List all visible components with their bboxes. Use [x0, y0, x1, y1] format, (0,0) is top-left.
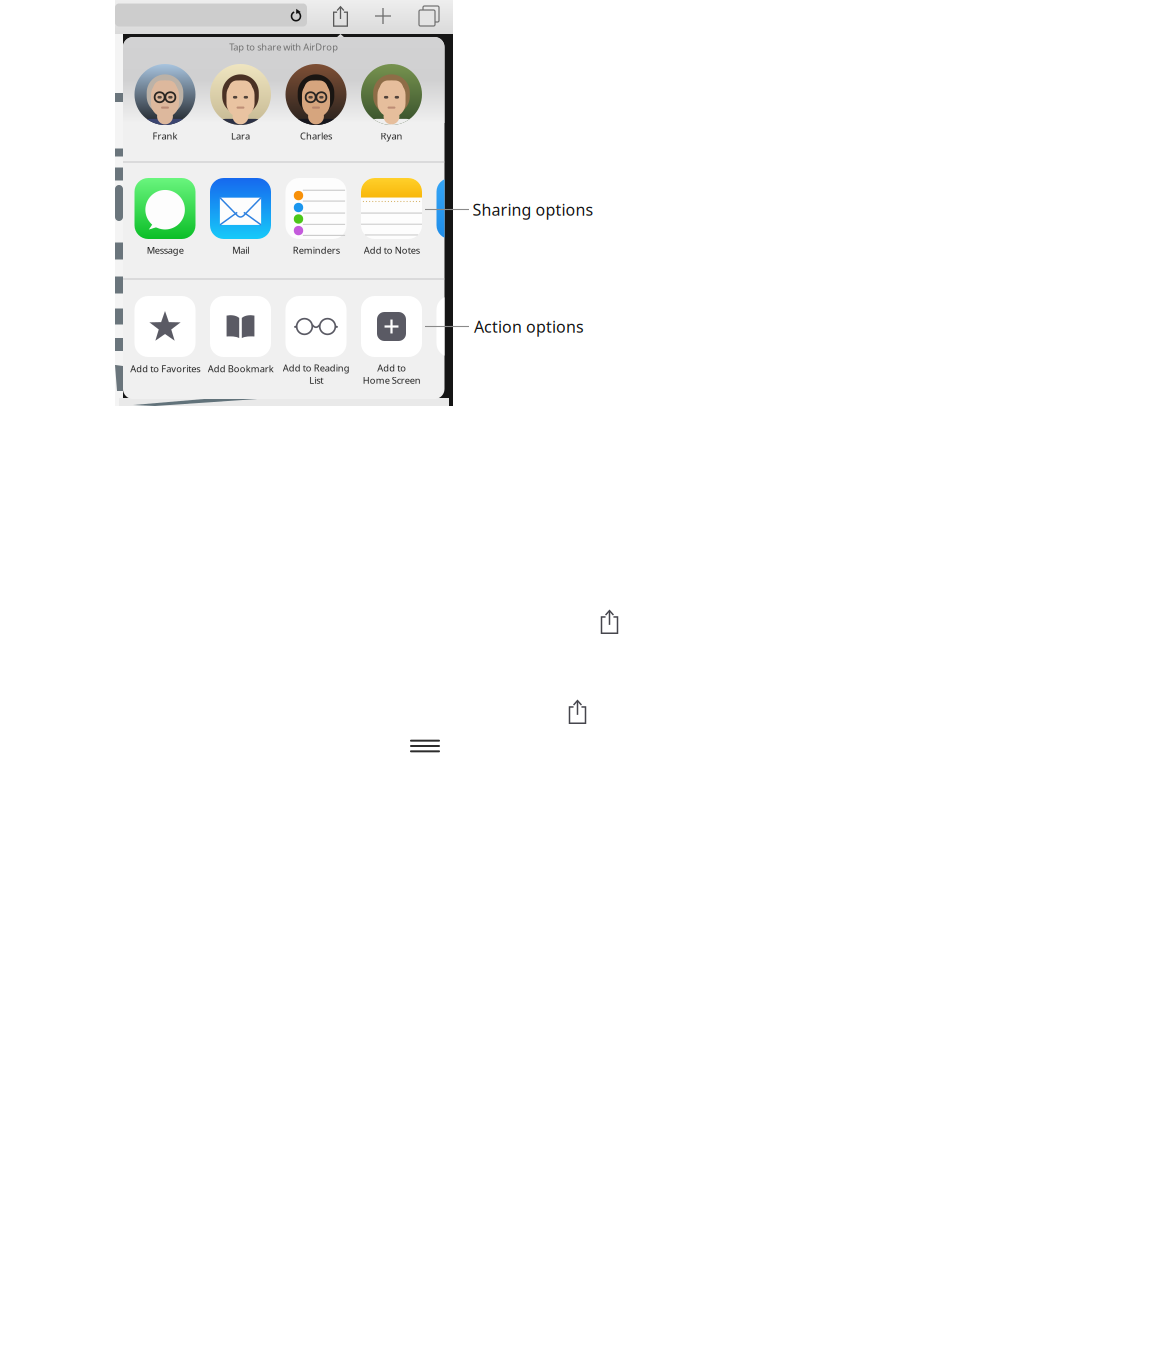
button[interactable]: Add to Home Screen — [352, 296, 430, 388]
button[interactable]: Lara — [210, 37, 271, 147]
button[interactable]: Add to Notes — [352, 178, 430, 264]
staticText: Message — [146, 244, 183, 256]
button[interactable]: Add to Favorites — [126, 296, 204, 388]
button[interactable]: Menu — [410, 740, 440, 752]
staticText: Ryan — [380, 130, 402, 142]
staticText: Reminders — [292, 244, 339, 256]
staticText: Sharing options — [472, 199, 593, 220]
button[interactable]: Ryan — [361, 37, 422, 147]
button[interactable]: Reminders — [277, 178, 355, 264]
button[interactable]: Show Tabs — [417, 4, 437, 24]
staticText: Add to Home Screen — [362, 362, 420, 386]
button[interactable]: Share — [333, 6, 348, 27]
button[interactable]: Message — [126, 178, 204, 264]
staticText: Add Bookmark — [207, 362, 273, 375]
button[interactable]: Sharing options — [472, 199, 593, 220]
button[interactable]: Share — [569, 700, 586, 724]
button[interactable]: Action options — [474, 316, 584, 337]
staticText: Charles — [300, 130, 332, 142]
button[interactable]: Mail — [201, 178, 279, 264]
button[interactable]: Frank — [134, 37, 195, 147]
button[interactable]: New Tab — [375, 8, 391, 24]
button[interactable]: Add Bookmark — [201, 296, 279, 388]
staticText: Add to Favorites — [130, 362, 200, 375]
staticText: Add to Notes — [363, 244, 419, 256]
staticText: Mail — [232, 244, 249, 256]
staticText: Frank — [152, 130, 177, 142]
staticText: Add to Reading List — [282, 362, 349, 386]
button[interactable]: Add to Reading List — [277, 296, 355, 388]
button[interactable]: Share — [601, 610, 618, 634]
button[interactable]: Charles — [285, 37, 346, 147]
staticText: Action options — [474, 316, 584, 337]
staticText: Lara — [231, 130, 250, 142]
staticText: Tap to share with AirDrop — [229, 41, 338, 53]
button[interactable]: Reload — [288, 7, 303, 22]
